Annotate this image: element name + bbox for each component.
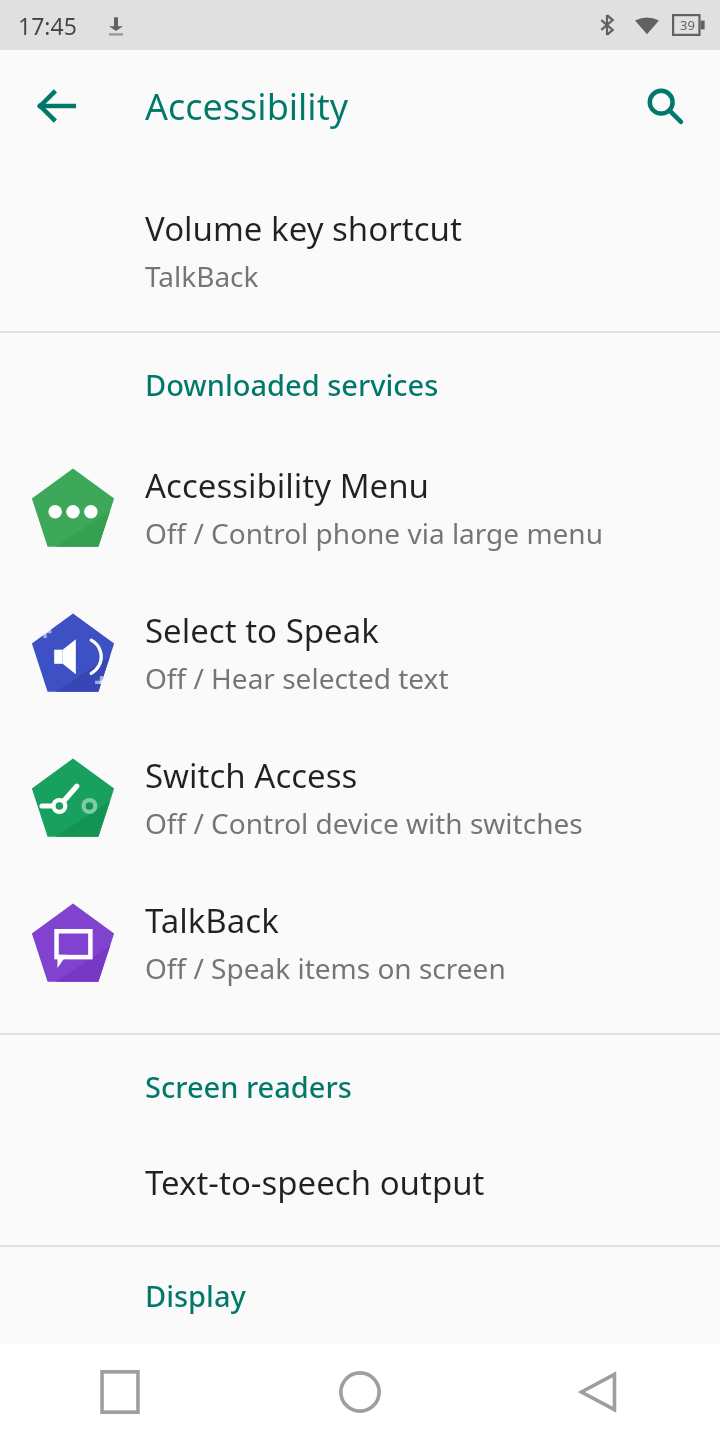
button[interactable]: Back <box>22 71 92 141</box>
staticText: Off / Speak items on screen <box>145 949 506 987</box>
button[interactable]: TalkBack <box>0 870 720 1015</box>
staticText: Screen readers <box>145 1067 352 1106</box>
staticText: Accessibility <box>145 82 349 131</box>
button[interactable]: Accessibility Menu <box>0 435 720 580</box>
staticText: 39 <box>680 16 695 34</box>
button[interactable]: Home <box>240 1344 480 1440</box>
staticText: Off / Control phone via large menu <box>145 514 603 552</box>
button[interactable]: Recents <box>0 1344 240 1440</box>
staticText: Downloaded services <box>145 365 439 404</box>
staticText: Select to Speak <box>145 608 379 653</box>
button[interactable]: Volume key shortcut <box>0 162 720 331</box>
staticText: Accessibility Menu <box>145 463 429 508</box>
button[interactable]: Text-to-speech output <box>0 1137 720 1227</box>
staticText: Text-to-speech output <box>145 1160 485 1205</box>
button[interactable]: Search <box>630 71 700 141</box>
staticText: 17:45 <box>18 10 77 41</box>
staticText: Volume key shortcut <box>145 206 462 251</box>
staticText: Switch Access <box>145 753 358 798</box>
staticText: Display <box>145 1276 246 1315</box>
staticText: Off / Control device with switches <box>145 804 583 842</box>
button[interactable]: Select to Speak <box>0 580 720 725</box>
staticText: Off / Hear selected text <box>145 659 449 697</box>
staticText: TalkBack <box>145 257 259 295</box>
button[interactable]: Back <box>480 1344 720 1440</box>
staticText: TalkBack <box>145 898 279 943</box>
button[interactable]: Switch Access <box>0 725 720 870</box>
